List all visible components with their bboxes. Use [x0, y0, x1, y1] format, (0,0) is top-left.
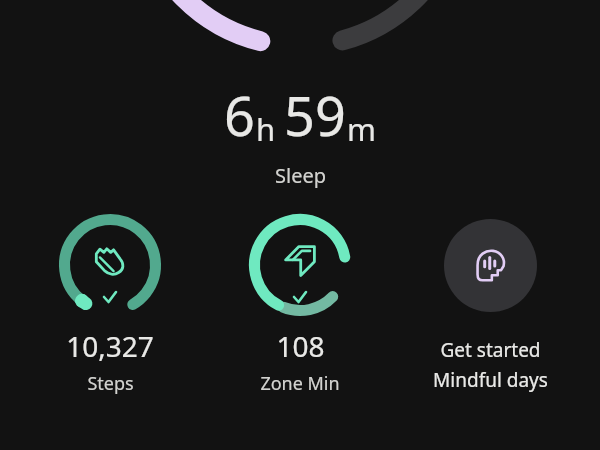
staticText: 10,327: [66, 327, 154, 365]
button[interactable]: 10,327: [30, 212, 190, 396]
button[interactable]: Mindful days, get started: [410, 212, 570, 393]
staticText: Zone Min: [260, 371, 340, 396]
staticText: 6: [224, 78, 255, 152]
staticText: Sleep: [275, 162, 326, 189]
button[interactable]: 6: [224, 78, 376, 189]
staticText: h: [256, 108, 276, 150]
staticText: Get started: [440, 337, 541, 363]
staticText: 59: [284, 78, 346, 152]
staticText: Mindful days: [433, 367, 548, 393]
button[interactable]: 108: [220, 212, 380, 396]
other: Mindful days, get started: [444, 219, 537, 312]
staticText: Steps: [87, 371, 134, 396]
staticText: 108: [276, 327, 325, 365]
staticText: m: [347, 108, 376, 150]
